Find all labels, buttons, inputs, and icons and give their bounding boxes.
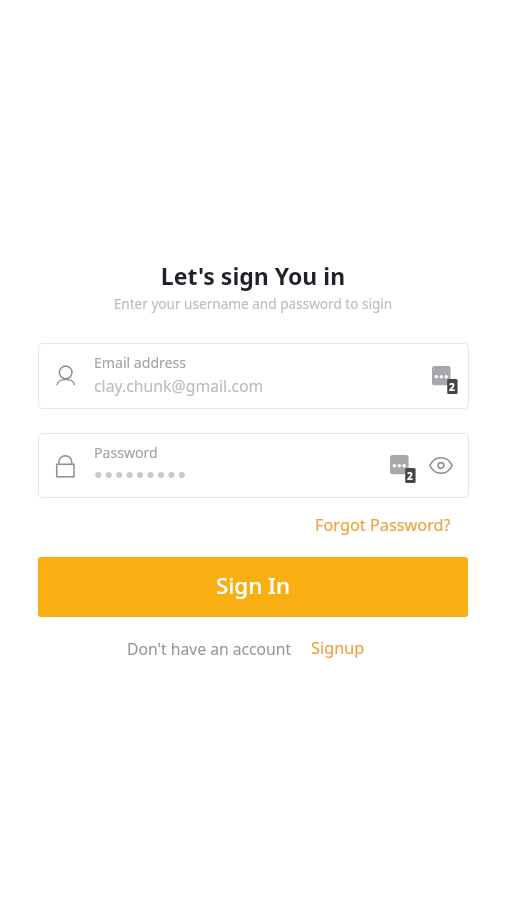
staticText: Forgot Password? xyxy=(315,514,451,536)
staticText: Let's sign You in xyxy=(0,260,506,291)
staticText: Password xyxy=(94,443,158,462)
staticText: 2 xyxy=(449,380,455,394)
button[interactable]: Show password xyxy=(428,452,454,478)
staticText: clay.chunk@gmail.com xyxy=(94,375,264,397)
staticText: Don't have an account xyxy=(127,638,292,659)
staticText: Enter your username and password to sigi… xyxy=(0,294,506,313)
staticText: Sign In xyxy=(216,570,291,601)
staticText: 2 xyxy=(407,469,413,483)
button[interactable]: Forgot Password? xyxy=(315,514,451,536)
button[interactable]: Email address xyxy=(38,343,469,409)
button[interactable]: Signup xyxy=(311,637,365,659)
staticText: Email address xyxy=(94,353,187,372)
staticText: Signup xyxy=(311,637,365,659)
button[interactable]: Autofill suggestions xyxy=(432,366,459,397)
button[interactable]: Sign In xyxy=(38,557,468,617)
button[interactable]: Autofill suggestions xyxy=(390,455,417,486)
button[interactable]: Password xyxy=(38,433,469,498)
